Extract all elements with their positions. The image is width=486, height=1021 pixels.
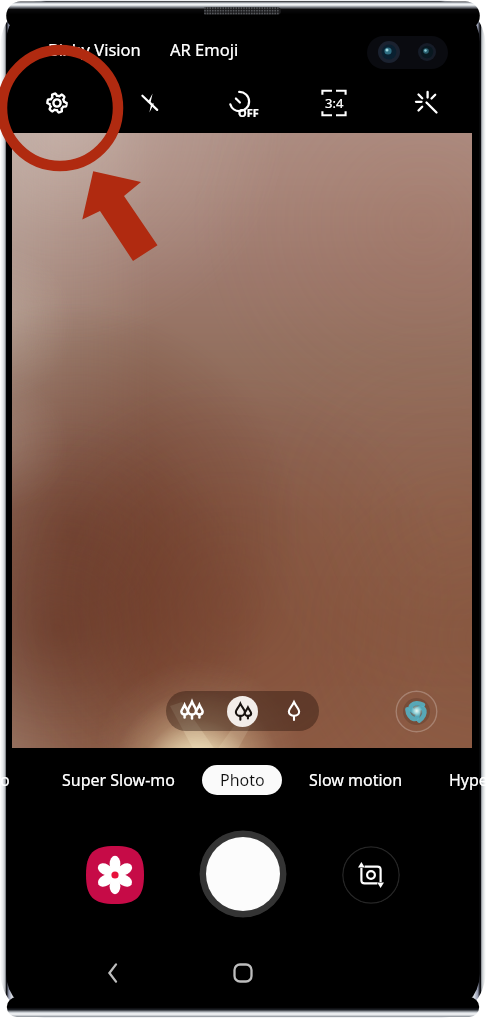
- button[interactable]: Photo: [202, 765, 282, 795]
- button[interactable]: Switch camera: [342, 846, 400, 904]
- button[interactable]: Wide: [217, 691, 268, 731]
- button[interactable]: Hyperlapse: [443, 765, 486, 795]
- staticText: Slow motion: [309, 769, 403, 791]
- button[interactable]: Super Slow-mo: [56, 765, 181, 795]
- button[interactable]: AR Emoji: [166, 36, 243, 62]
- button[interactable]: Aspect ratio 3 to 4: [312, 81, 356, 125]
- button[interactable]: Flash off: [128, 81, 172, 125]
- staticText: Pro: [0, 769, 10, 791]
- button[interactable]: Home: [221, 951, 265, 995]
- button[interactable]: Pro: [0, 765, 16, 795]
- staticText: OFF: [238, 105, 259, 120]
- staticText: Bixby Vision: [48, 38, 141, 60]
- staticText: 3:4: [325, 94, 344, 112]
- button[interactable]: Telephoto: [268, 691, 319, 731]
- button[interactable]: Gallery: [86, 846, 144, 904]
- button[interactable]: Ultra wide: [166, 691, 217, 731]
- button[interactable]: Filters and effects: [405, 81, 449, 125]
- button[interactable]: Scene optimizer: [395, 690, 438, 733]
- button[interactable]: Take picture: [199, 830, 287, 918]
- staticText: Hyperlapse: [449, 769, 486, 791]
- button[interactable]: Camera settings: [35, 81, 79, 125]
- staticText: Super Slow-mo: [62, 769, 175, 791]
- button[interactable]: Slow motion: [303, 765, 409, 795]
- staticText: Photo: [220, 769, 265, 791]
- button[interactable]: Bixby Vision: [44, 36, 145, 62]
- button[interactable]: Back: [91, 951, 135, 995]
- button[interactable]: Timer off: [218, 81, 262, 125]
- staticText: AR Emoji: [170, 38, 239, 60]
